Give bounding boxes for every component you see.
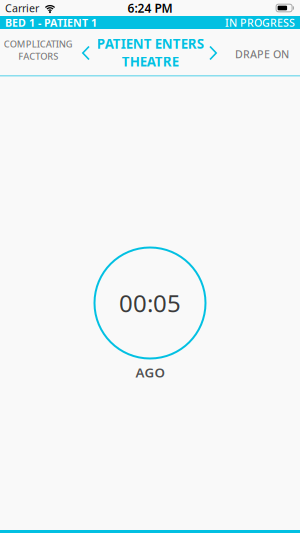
- staticText: COMPLICATING FACTORS: [3, 38, 72, 62]
- staticText: DRAPE ON: [235, 47, 289, 61]
- staticText: PATIENT ENTERS THEATRE: [96, 35, 203, 70]
- button[interactable]: 00:05: [94, 247, 205, 358]
- button[interactable]: DRAPE ON: [210, 45, 300, 59]
- staticText: 6:24 PM: [127, 0, 172, 16]
- staticText: 00:05: [119, 287, 181, 319]
- staticText: Carrier: [5, 1, 39, 15]
- staticText: IN PROGRESS: [225, 15, 295, 30]
- staticText: BED 1 - PATIENT 1: [5, 15, 97, 30]
- staticText: AGO: [135, 363, 164, 381]
- button[interactable]: COMPLICATING FACTORS: [0, 40, 90, 64]
